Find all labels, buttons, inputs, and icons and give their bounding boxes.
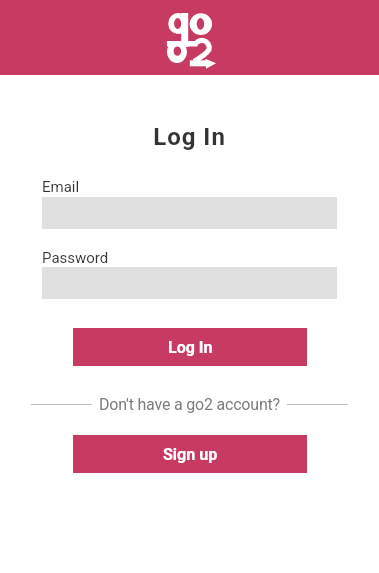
button[interactable]: Log In <box>73 328 307 366</box>
staticText: Sign up <box>163 445 218 464</box>
staticText: Email <box>42 178 80 196</box>
button[interactable]: Sign up <box>73 435 307 473</box>
staticText: Password <box>42 249 109 267</box>
staticText: Log In <box>0 123 379 151</box>
other: go2 logo <box>165 10 219 66</box>
staticText: Log In <box>168 338 213 357</box>
staticText: Don't have a go2 account? <box>99 395 280 414</box>
